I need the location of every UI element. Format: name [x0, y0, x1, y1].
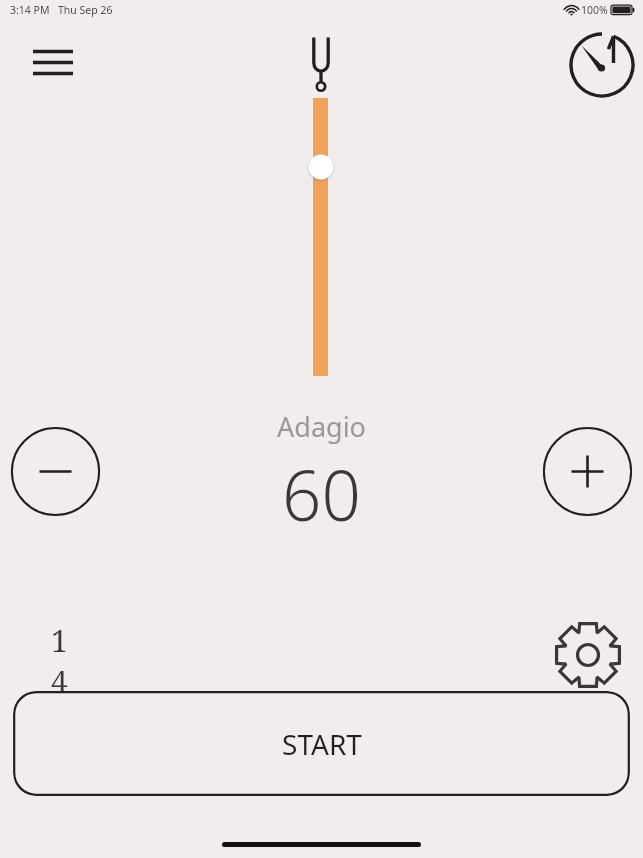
button[interactable]: Time signature [38, 620, 80, 702]
button[interactable]: Menu [22, 36, 84, 90]
staticText: 3:14 PM [10, 3, 50, 17]
button[interactable]: Tempo slider [313, 98, 328, 376]
staticText: 1 [51, 620, 68, 661]
staticText: Adagio [277, 408, 366, 445]
staticText: 4 [51, 661, 68, 702]
button[interactable]: Settings [552, 619, 624, 691]
button[interactable]: Increase tempo [543, 427, 632, 516]
button[interactable]: Decrease tempo [11, 427, 100, 516]
button[interactable]: Timer [566, 29, 638, 101]
button[interactable]: Tuner [297, 30, 345, 100]
staticText: START [282, 725, 362, 763]
staticText: Thu Sep 26 [58, 3, 113, 17]
staticText: 100% [581, 3, 608, 17]
button[interactable]: START [13, 691, 630, 796]
button[interactable]: Tempo thumb [307, 153, 335, 181]
staticText: 60 [282, 447, 361, 541]
